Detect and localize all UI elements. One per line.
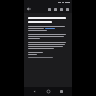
button[interactable]: Back bbox=[31, 88, 38, 95]
button[interactable]: More options bbox=[64, 6, 70, 12]
button[interactable]: Mark unread bbox=[58, 6, 64, 12]
button[interactable]: Home bbox=[45, 88, 52, 95]
button[interactable]: Recent apps bbox=[58, 88, 65, 95]
button[interactable]: Back bbox=[26, 6, 32, 12]
button[interactable]: Archive bbox=[46, 6, 52, 12]
button[interactable]: Delete bbox=[52, 6, 58, 12]
button[interactable] bbox=[45, 28, 55, 29]
